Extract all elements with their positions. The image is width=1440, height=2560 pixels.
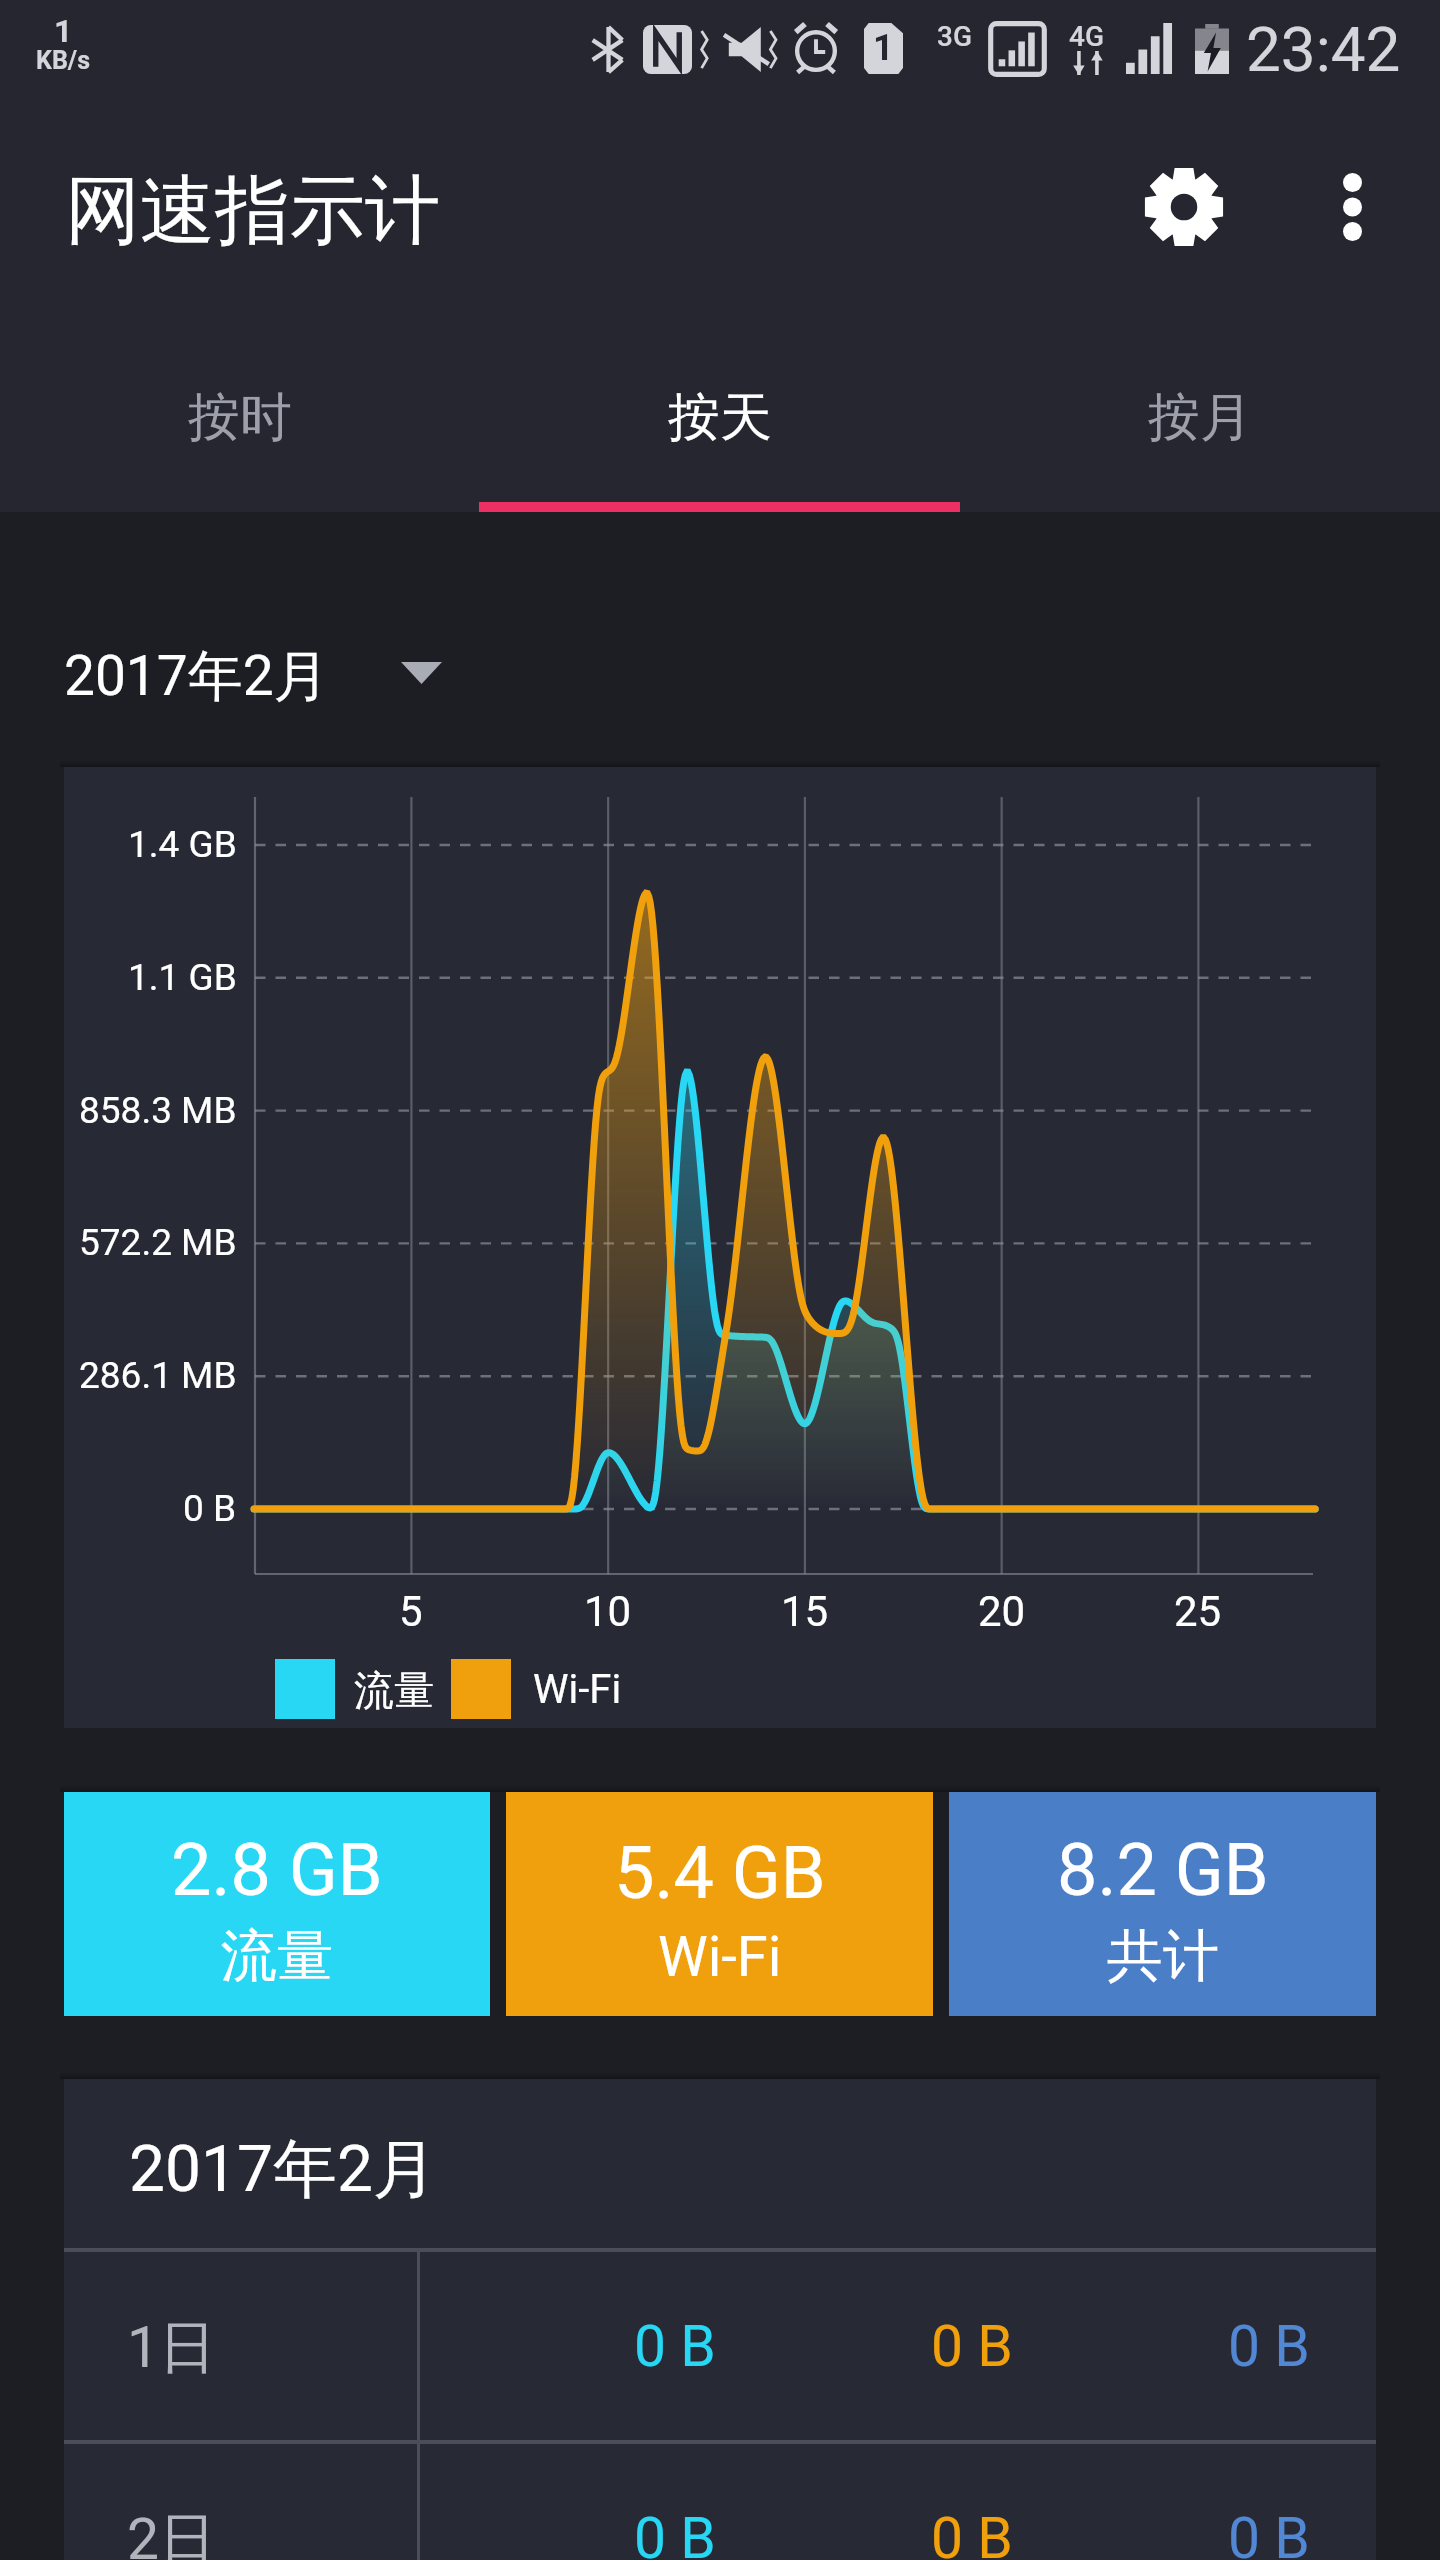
staticText: 2.8 GB: [171, 1828, 383, 1912]
staticText: 共计: [1107, 1921, 1219, 1992]
staticText: 流量: [221, 1921, 333, 1992]
staticText: 10: [584, 1587, 632, 1636]
staticText: Wi-Fi: [533, 1666, 622, 1713]
staticText: KB/s: [36, 46, 91, 75]
staticText: 按时: [188, 385, 292, 451]
staticText: 0 B: [183, 1487, 237, 1530]
staticText: 1.1 GB: [128, 956, 237, 999]
staticText: 0 B: [931, 2505, 1013, 2560]
button[interactable]: 1日: [64, 2252, 1376, 2440]
staticText: Wi-Fi: [658, 1924, 782, 1990]
button[interactable]: 8.2 GB: [949, 1792, 1376, 2016]
staticText: 1: [873, 27, 894, 69]
staticText: 0 B: [1228, 2505, 1310, 2560]
staticText: 286.1 MB: [79, 1354, 237, 1397]
staticText: 1: [54, 12, 73, 50]
staticText: 2017年2月: [64, 642, 329, 711]
button[interactable]: 2017年2月: [64, 642, 456, 711]
staticText: 25: [1174, 1587, 1222, 1636]
staticText: 5.4 GB: [614, 1831, 826, 1915]
button[interactable]: 按月: [960, 300, 1440, 512]
staticText: 8.2 GB: [1057, 1828, 1269, 1912]
button[interactable]: 按天: [480, 300, 960, 512]
staticText: 按月: [1148, 385, 1252, 451]
staticText: 23:42: [1246, 13, 1401, 86]
button[interactable]: 按时: [0, 300, 480, 512]
button[interactable]: More options: [1286, 112, 1440, 302]
staticText: 0 B: [1228, 2313, 1310, 2380]
staticText: 网速指示计: [65, 164, 440, 258]
staticText: 4G: [1069, 20, 1104, 53]
button[interactable]: 2.8 GB: [64, 1792, 490, 2016]
staticText: 0 B: [931, 2313, 1013, 2380]
staticText: 15: [781, 1587, 829, 1636]
staticText: 0 B: [634, 2505, 716, 2560]
staticText: 2017年2月: [129, 2129, 437, 2210]
staticText: 0 B: [634, 2313, 716, 2380]
staticText: 20: [978, 1587, 1026, 1636]
staticText: 按天: [668, 385, 772, 451]
staticText: 5: [399, 1587, 423, 1636]
staticText: 858.3 MB: [79, 1089, 237, 1132]
staticText: 572.2 MB: [79, 1221, 237, 1264]
button[interactable]: Settings: [1089, 112, 1279, 302]
staticText: 1.4 GB: [128, 823, 237, 866]
button[interactable]: 5.4 GB: [506, 1792, 933, 2016]
staticText: 流量: [354, 1665, 434, 1715]
staticText: 1日: [127, 2312, 217, 2384]
staticText: 2日: [127, 2504, 217, 2560]
button[interactable]: 2日: [64, 2444, 1376, 2560]
staticText: 3G: [937, 20, 972, 53]
